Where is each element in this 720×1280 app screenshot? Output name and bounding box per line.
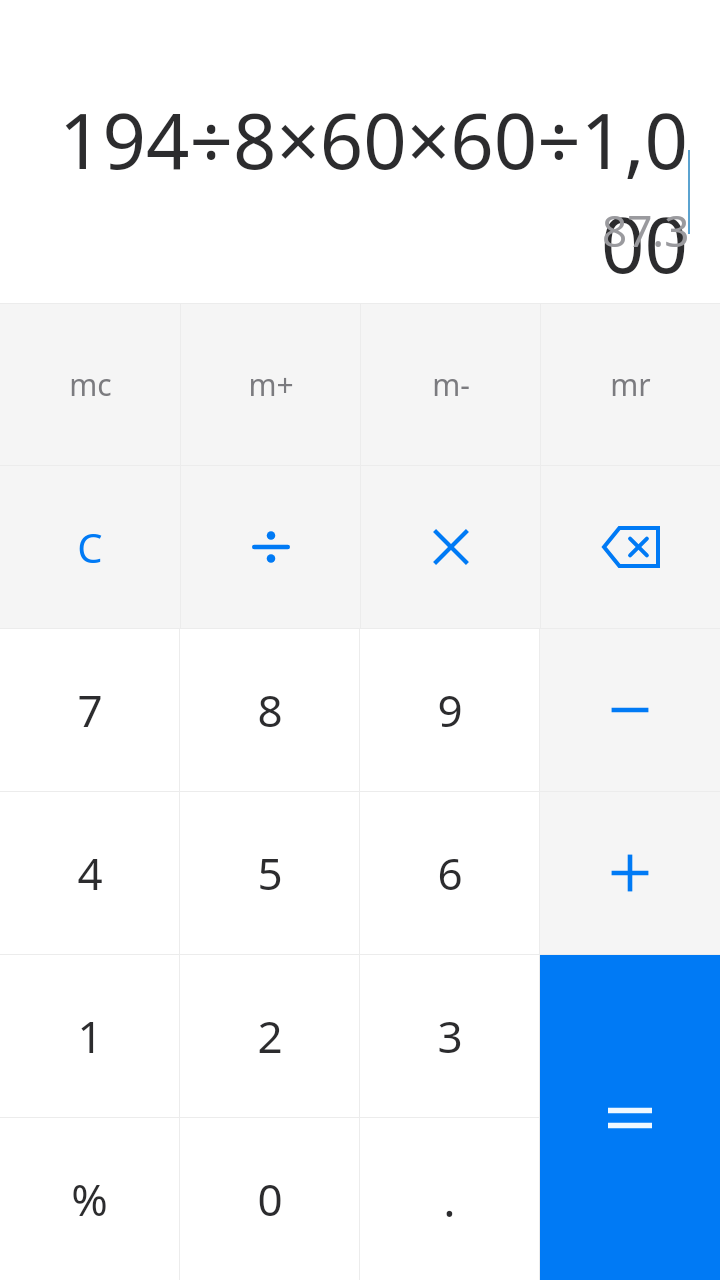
button[interactable]: Backspace <box>541 466 720 628</box>
button[interactable]: % <box>0 1118 179 1280</box>
button[interactable]: Multiply <box>361 466 540 628</box>
button[interactable]: mr <box>541 304 720 465</box>
button[interactable]: 5 <box>180 792 359 954</box>
staticText: 3 <box>437 1006 463 1066</box>
staticText: 2 <box>257 1006 283 1066</box>
button[interactable]: Equals <box>540 955 720 1280</box>
staticText: % <box>71 1169 108 1229</box>
staticText: 5 <box>257 843 283 903</box>
button[interactable]: 8 <box>180 629 359 791</box>
button[interactable]: mc <box>0 304 180 465</box>
button[interactable]: 2 <box>180 955 359 1117</box>
button[interactable]: 7 <box>0 629 179 791</box>
staticText: m- <box>432 364 470 405</box>
button[interactable]: m+ <box>181 304 360 465</box>
staticText: 87.3 <box>602 200 690 260</box>
button[interactable]: 0 <box>180 1118 359 1280</box>
staticText: C <box>77 520 103 574</box>
staticText: 4 <box>77 843 103 903</box>
staticText: mr <box>610 364 651 405</box>
button[interactable]: . <box>360 1118 539 1280</box>
button[interactable]: C <box>0 466 180 628</box>
staticText: 1 <box>77 1006 103 1066</box>
staticText: 194÷8×60×60÷1,000 <box>24 88 688 296</box>
staticText: 6 <box>437 843 463 903</box>
button[interactable]: Minus <box>540 629 720 791</box>
staticText: m+ <box>248 364 294 405</box>
staticText: 7 <box>77 680 103 740</box>
staticText: 0 <box>257 1169 283 1229</box>
button[interactable]: 1 <box>0 955 179 1117</box>
button[interactable]: 9 <box>360 629 539 791</box>
button[interactable]: 4 <box>0 792 179 954</box>
staticText: mc <box>69 364 112 405</box>
button[interactable]: Plus <box>540 792 720 954</box>
button[interactable]: 3 <box>360 955 539 1117</box>
button[interactable]: m- <box>361 304 540 465</box>
button[interactable]: 6 <box>360 792 539 954</box>
staticText: . <box>443 1168 456 1231</box>
button[interactable]: Divide <box>181 466 360 628</box>
staticText: 9 <box>437 680 463 740</box>
staticText: 8 <box>257 680 283 740</box>
